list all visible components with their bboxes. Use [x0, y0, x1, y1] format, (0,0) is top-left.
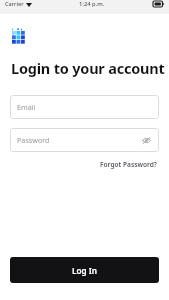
button[interactable]: Email — [10, 95, 159, 119]
staticText: Forgot Password? — [100, 160, 157, 169]
staticText: Log In — [72, 265, 98, 276]
button[interactable]: Log In — [10, 257, 159, 283]
staticText: Carrier — [5, 0, 24, 8]
button[interactable]: Forgot Password? — [98, 158, 159, 171]
staticText: Email — [17, 102, 36, 112]
button[interactable]: Show password — [140, 134, 152, 146]
staticText: Login to your account — [11, 58, 165, 78]
staticText: 1:24 p.m. — [79, 0, 105, 8]
button[interactable]: Password — [10, 128, 159, 152]
staticText: Password — [17, 135, 50, 145]
